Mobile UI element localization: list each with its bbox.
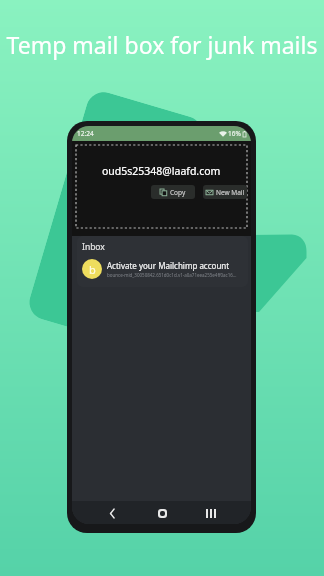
staticText: 16% <box>228 129 241 138</box>
button[interactable]: b <box>77 253 248 287</box>
button[interactable]: Back <box>102 503 122 523</box>
staticText: oud5s25348@laafd.com <box>102 164 221 178</box>
button[interactable]: Recent apps <box>201 503 221 523</box>
staticText: Temp mail box for junk mails <box>0 29 324 60</box>
staticText: 12:24 <box>77 129 94 138</box>
staticText: bounce-mid_30050842.651d0c1d.v1-a0a71eea… <box>107 272 237 278</box>
staticText: Copy <box>170 188 186 197</box>
button[interactable]: Home <box>152 503 172 523</box>
staticText: b <box>89 262 96 277</box>
button[interactable]: New Mail <box>203 185 247 199</box>
staticText: Inbox <box>82 241 105 253</box>
staticText: New Mail <box>216 188 245 197</box>
button[interactable]: Copy <box>151 185 195 199</box>
staticText: Activate your Mailchimp account <box>107 260 230 271</box>
